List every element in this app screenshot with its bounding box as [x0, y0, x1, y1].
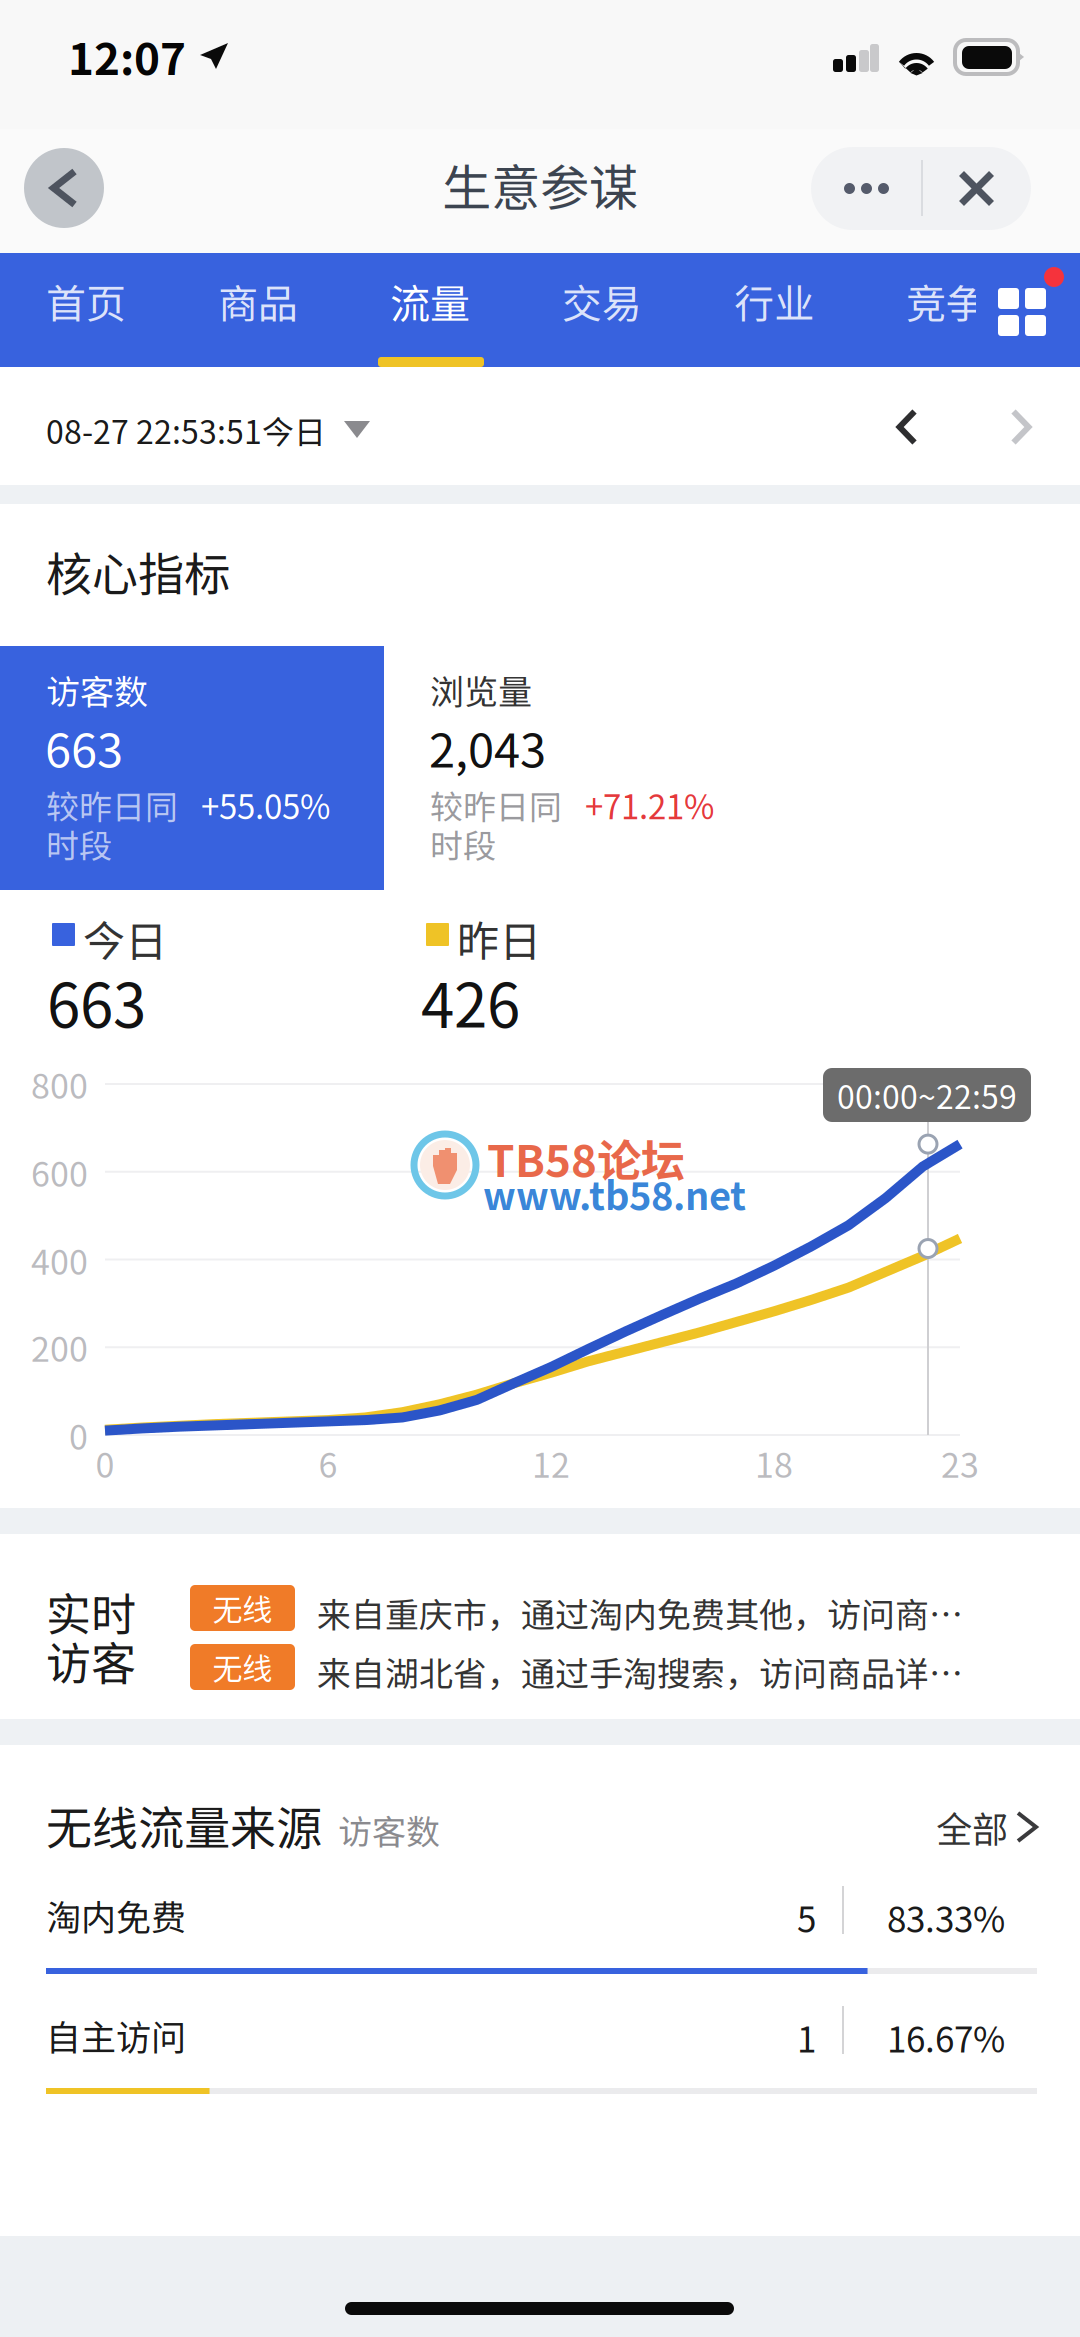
staticText: 较昨日同 [46, 781, 178, 829]
staticText: 无线 [212, 1586, 272, 1630]
staticText: TB58论坛 [487, 1126, 685, 1190]
staticText: 实时 [46, 1579, 136, 1644]
staticText: 400 [31, 1235, 88, 1285]
button[interactable]: 自主访问 [0, 2006, 1080, 2116]
staticText: 08-27 22:53:51今日 [46, 407, 326, 453]
staticText: 交易 [562, 272, 642, 330]
staticText: www.tb58.net [483, 1166, 746, 1221]
staticText: 来自重庆市，通过淘内免费其他，访问商… [317, 1588, 963, 1637]
staticText: +55.05% [201, 781, 330, 829]
staticText: 昨日 [457, 908, 541, 969]
staticText: 访客数 [338, 1805, 440, 1854]
staticText: 首页 [46, 272, 126, 330]
staticText: 访客 [46, 1628, 136, 1693]
staticText: 1 [797, 2012, 816, 2063]
staticText: 生意参谋 [442, 149, 638, 220]
staticText: 流量 [390, 272, 470, 330]
staticText: 较昨日同 [430, 781, 562, 829]
staticText: +71.21% [585, 781, 714, 829]
staticText: 12 [532, 1438, 570, 1488]
staticText: 663 [45, 713, 123, 781]
button[interactable]: 商品 [216, 273, 300, 329]
button[interactable]: 无线 [190, 1585, 1020, 1639]
staticText: 淘内免费 [46, 1890, 186, 1941]
staticText: 全部 [936, 1801, 1008, 1853]
staticText: 核心指标 [46, 538, 230, 605]
button[interactable]: Back [12, 136, 116, 240]
staticText: 行业 [734, 272, 814, 330]
staticText: 访客数 [46, 665, 148, 714]
staticText: 无线 [212, 1645, 272, 1689]
staticText: 无线流量来源 [46, 1792, 322, 1858]
staticText: 12:07 [68, 24, 186, 88]
button[interactable]: All metrics [976, 253, 1080, 367]
staticText: 2,043 [429, 713, 546, 781]
staticText: 时段 [46, 820, 112, 868]
staticText: 83.33% [887, 1892, 1005, 1943]
staticText: 663 [47, 958, 146, 1045]
staticText: 0 [95, 1438, 114, 1488]
button[interactable]: Next day [976, 377, 1066, 477]
staticText: 来自湖北省，通过手淘搜索，访问商品详… [317, 1647, 963, 1696]
staticText: 6 [318, 1438, 337, 1488]
button[interactable]: 交易 [560, 273, 644, 329]
button[interactable]: 首页 [44, 273, 128, 329]
staticText: 时段 [430, 820, 496, 868]
staticText: 600 [31, 1147, 88, 1197]
button[interactable]: 浏览量 [384, 646, 1080, 890]
button[interactable]: 流量 [388, 273, 472, 329]
button[interactable]: 08-27 22:53:51今日 [46, 395, 446, 465]
staticText: 23 [941, 1438, 979, 1488]
staticText: 商品 [218, 272, 298, 330]
staticText: 浏览量 [430, 665, 532, 714]
staticText: 5 [797, 1892, 816, 1943]
button[interactable]: 无线 [190, 1644, 1020, 1698]
button[interactable]: Previous day [862, 377, 952, 477]
staticText: 自主访问 [46, 2010, 186, 2061]
staticText: 800 [31, 1059, 88, 1109]
button[interactable]: Close [922, 147, 1031, 230]
staticText: 16.67% [887, 2012, 1005, 2063]
staticText: 426 [421, 958, 520, 1045]
button[interactable]: 访客数 [0, 646, 384, 890]
button[interactable]: More [811, 147, 922, 230]
button[interactable]: 竞争 [904, 273, 988, 329]
button[interactable]: 无线流量来源 [46, 1794, 546, 1856]
button[interactable]: 全部 [878, 1796, 1038, 1858]
staticText: 今日 [83, 908, 167, 969]
button[interactable]: 淘内免费 [0, 1886, 1080, 1996]
staticText: 00:00~22:59 [837, 1072, 1017, 1118]
staticText: 18 [755, 1438, 793, 1488]
button[interactable]: 行业 [732, 273, 816, 329]
staticText: 200 [31, 1322, 88, 1372]
staticText: 0 [69, 1410, 88, 1460]
staticText: 竞争 [906, 272, 986, 330]
